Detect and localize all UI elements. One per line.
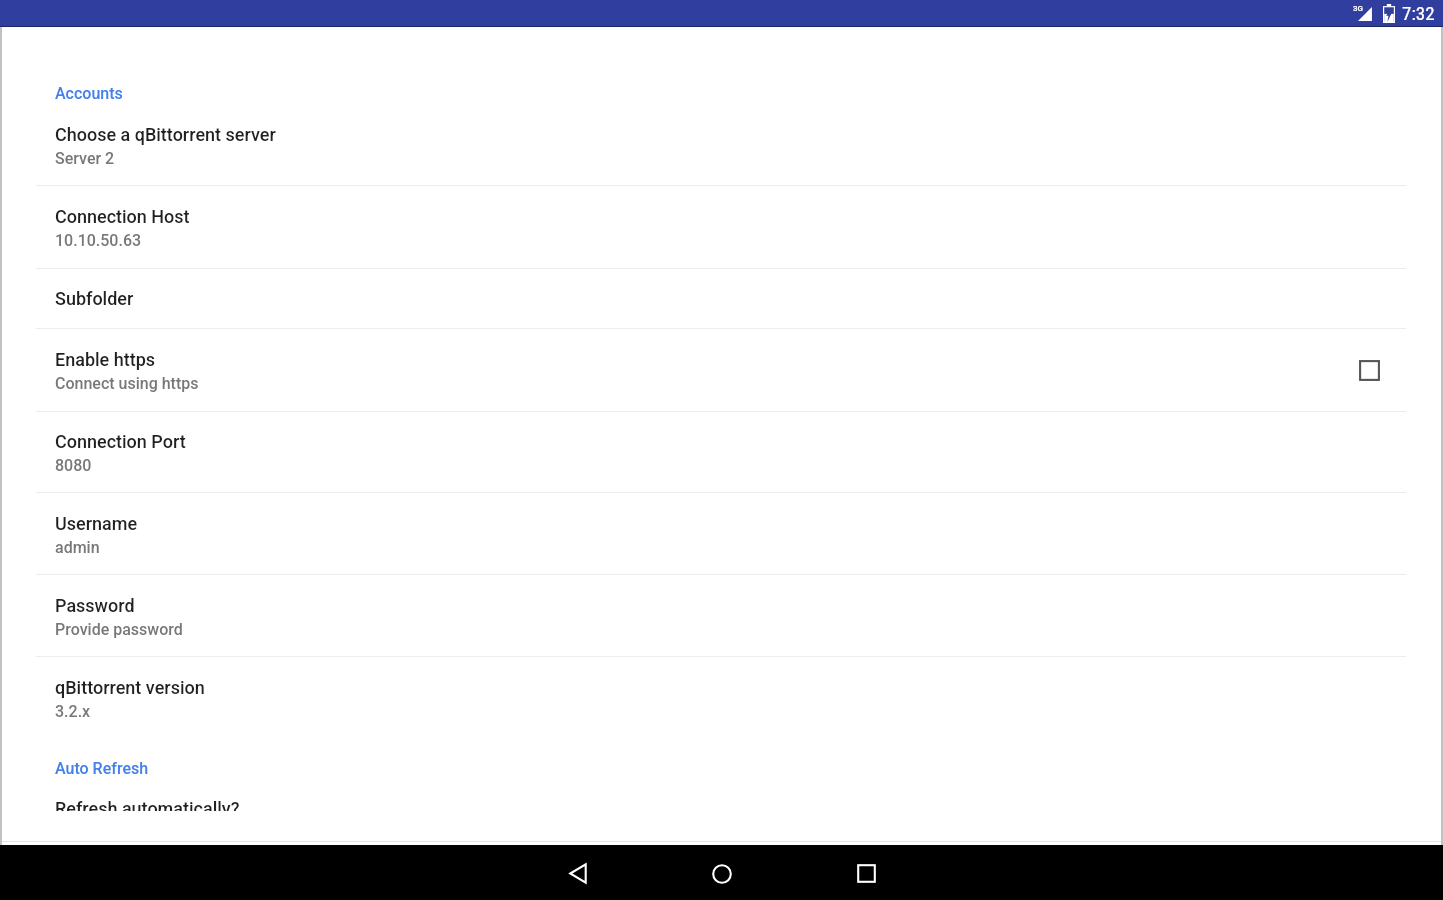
staticText: Server 2 (55, 149, 115, 168)
button[interactable]: Home (682, 845, 762, 900)
button[interactable]: Username (0, 499, 1443, 569)
staticText: 7:32 (1402, 2, 1435, 24)
button[interactable]: Recent apps (826, 845, 906, 900)
staticText: Enable https (55, 349, 156, 370)
button[interactable]: Connection Port (0, 417, 1443, 487)
staticText: 3.2.x (55, 702, 91, 721)
staticText: Choose a qBittorrent server (55, 124, 276, 145)
staticText: Connect using https (55, 374, 199, 393)
staticText: Connection Host (55, 206, 190, 227)
staticText: Username (55, 513, 138, 534)
button[interactable]: Choose a qBittorrent server (0, 110, 1443, 180)
staticText: 3G (1353, 4, 1363, 13)
button[interactable]: Enable https (0, 335, 1443, 405)
button[interactable]: qBittorrent version (0, 663, 1443, 733)
staticText: admin (55, 538, 100, 557)
button[interactable]: Password (0, 581, 1443, 651)
staticText: 10.10.50.63 (55, 231, 142, 250)
staticText: Provide password (55, 620, 183, 639)
staticText: Subfolder (55, 288, 134, 309)
button[interactable]: Back (538, 845, 618, 900)
staticText: Password (55, 595, 135, 616)
staticText: Connection Port (55, 431, 186, 452)
staticText: 8080 (55, 456, 92, 475)
staticText: Auto Refresh (55, 759, 149, 778)
button[interactable]: Subfolder (0, 274, 1443, 322)
staticText: Accounts (55, 84, 123, 103)
staticText: qBittorrent version (55, 677, 205, 698)
button[interactable]: Refresh automatically? (0, 784, 1443, 811)
staticText: Refresh automatically? (55, 798, 240, 811)
button[interactable]: Connection Host (0, 192, 1443, 262)
